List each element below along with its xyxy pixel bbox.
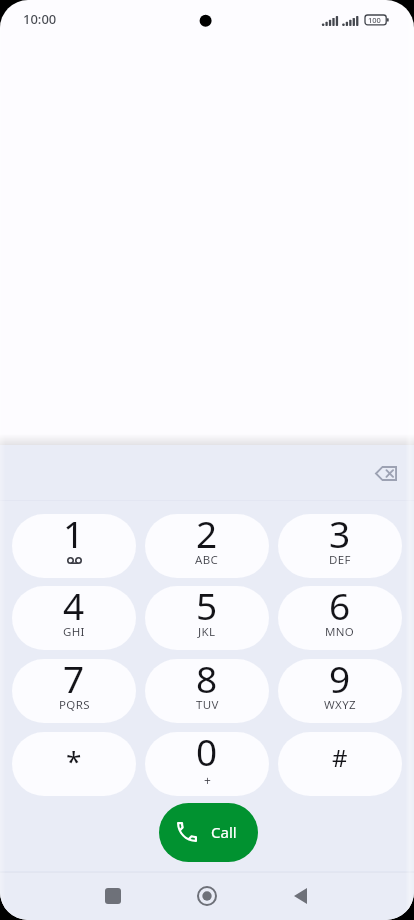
staticText: 6: [329, 586, 351, 630]
button[interactable]: 5: [145, 586, 269, 650]
staticText: 10:00: [23, 10, 57, 28]
button[interactable]: Home: [183, 872, 231, 920]
staticText: +: [204, 772, 211, 788]
staticText: 5: [196, 586, 218, 630]
staticText: #: [332, 741, 348, 774]
staticText: DEF: [329, 552, 351, 568]
staticText: 1: [63, 514, 85, 558]
button[interactable]: 1: [12, 514, 136, 578]
staticText: 2: [196, 514, 218, 558]
button[interactable]: Backspace: [362, 449, 410, 497]
button[interactable]: 2: [145, 514, 269, 578]
staticText: 8: [196, 659, 218, 703]
button[interactable]: 6: [278, 586, 402, 650]
staticText: MNO: [325, 624, 355, 640]
button[interactable]: Back: [276, 872, 324, 920]
button[interactable]: *: [12, 732, 136, 796]
staticText: PQRS: [59, 697, 90, 713]
button[interactable]: #: [278, 732, 402, 796]
button[interactable]: 0: [145, 732, 269, 796]
staticText: GHI: [63, 624, 85, 640]
button[interactable]: Recent apps: [89, 872, 137, 920]
staticText: 100: [368, 15, 381, 25]
staticText: JKL: [198, 624, 216, 640]
button[interactable]: 4: [12, 586, 136, 650]
button[interactable]: 7: [12, 659, 136, 723]
button[interactable]: Call: [159, 803, 258, 862]
staticText: 9: [329, 659, 351, 703]
staticText: 3: [329, 514, 351, 558]
staticText: ABC: [195, 552, 219, 568]
button[interactable]: 8: [145, 659, 269, 723]
staticText: Call: [211, 822, 237, 842]
staticText: 0: [196, 732, 218, 776]
staticText: 7: [63, 659, 85, 703]
staticText: 4: [63, 586, 85, 630]
staticText: WXYZ: [324, 697, 356, 713]
staticText: *: [66, 742, 82, 780]
button[interactable]: 9: [278, 659, 402, 723]
button[interactable]: 3: [278, 514, 402, 578]
staticText: TUV: [196, 697, 219, 713]
